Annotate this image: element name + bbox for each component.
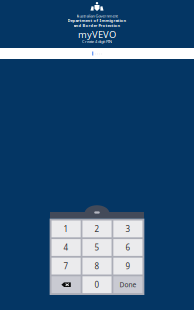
button[interactable]: Done <box>113 276 142 293</box>
button[interactable]: Delete <box>51 276 81 293</box>
button[interactable]: 5 <box>82 239 112 256</box>
staticText: 3 <box>125 224 130 234</box>
staticText: and Border Protection <box>73 23 120 28</box>
staticText: 2 <box>94 224 99 234</box>
staticText: 9 <box>125 261 130 271</box>
staticText: 7 <box>64 261 69 271</box>
staticText: 4 <box>64 242 69 253</box>
staticText: Create 4 digit PIN <box>82 39 112 44</box>
button[interactable]: 8 <box>82 258 112 274</box>
button[interactable]: 2 <box>82 220 112 237</box>
staticText: 6 <box>125 242 130 253</box>
button[interactable]: 3 <box>113 220 142 237</box>
button[interactable]: 1 <box>51 220 81 237</box>
staticText: myVEVO <box>78 28 116 41</box>
staticText: 1 <box>64 224 69 234</box>
staticText: 0 <box>94 279 99 290</box>
staticText: 8 <box>94 261 99 271</box>
staticText: · · · · <box>95 50 102 57</box>
button[interactable]: 9 <box>113 258 142 274</box>
button[interactable]: 7 <box>51 258 81 274</box>
staticText: 5 <box>94 242 99 253</box>
button[interactable]: 0 <box>82 276 112 293</box>
staticText: Australian Government <box>76 13 117 19</box>
button[interactable]: 4 <box>51 239 81 256</box>
staticText: Done <box>119 280 136 289</box>
button[interactable]: 6 <box>113 239 142 256</box>
staticText: Department of Immigration <box>67 18 126 23</box>
